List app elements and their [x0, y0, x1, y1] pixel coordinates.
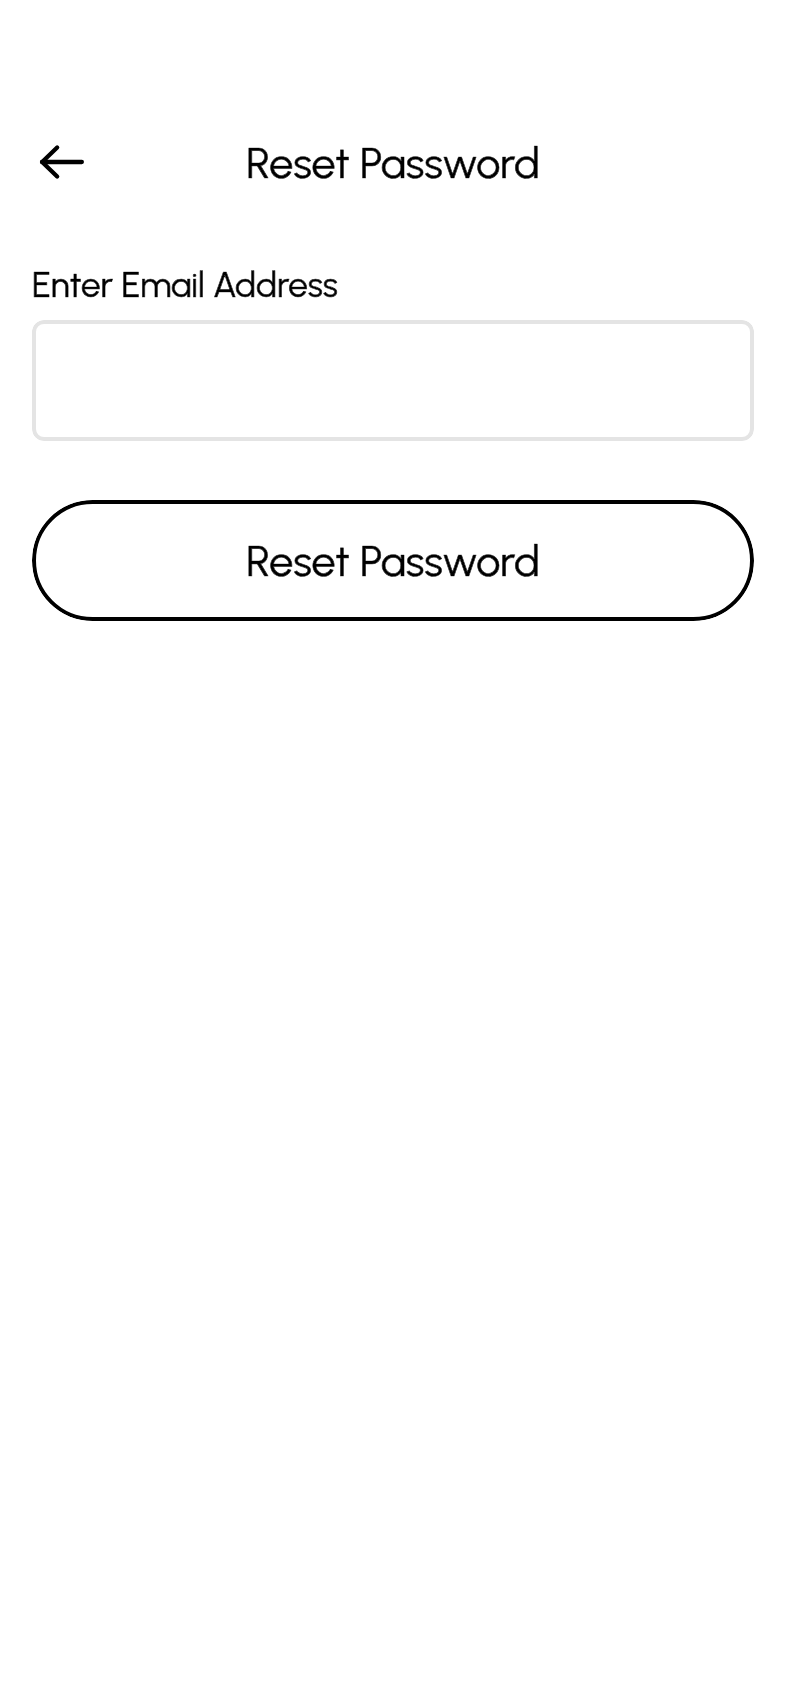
staticText: Enter Email Address [32, 264, 338, 306]
staticText: Reset Password [246, 535, 540, 587]
staticText: Reset Password [246, 137, 540, 189]
staticText: Enter Email Address [32, 264, 338, 306]
button[interactable]: Reset Password [32, 500, 754, 621]
button[interactable]: Enter Email Address [32, 320, 754, 441]
staticText: Reset Password [246, 137, 540, 189]
staticText: Reset Password [246, 535, 540, 587]
button[interactable]: Back [34, 134, 90, 190]
